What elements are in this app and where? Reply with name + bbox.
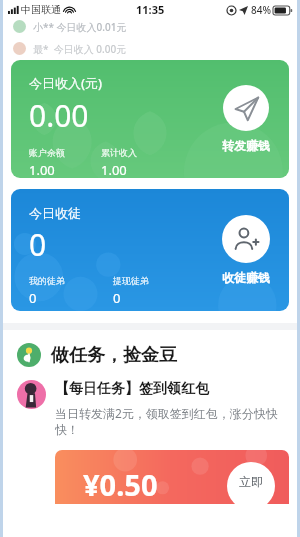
staticText: 立即 <box>239 474 263 489</box>
staticText: 账户余额 <box>29 147 65 158</box>
staticText: 做任务，捡金豆 <box>51 344 177 367</box>
button[interactable]: 【每日任务】签到领红包 <box>17 380 285 438</box>
staticText: 84% <box>251 3 271 17</box>
staticText: 中国联通 <box>21 3 61 16</box>
staticText: 0 <box>113 289 121 307</box>
staticText: 0.00 <box>29 95 89 136</box>
staticText: 当日转发满2元，领取签到红包，涨分快快快！ <box>55 405 285 438</box>
button[interactable]: 收徒赚钱 <box>222 215 270 285</box>
staticText: 我的徒弟 <box>29 275 65 286</box>
button[interactable]: 今日收入(元) <box>11 60 289 178</box>
staticText: 转发赚钱 <box>222 138 270 153</box>
button[interactable]: 转发赚钱 <box>222 85 270 153</box>
staticText: 提现徒弟 <box>113 275 149 286</box>
staticText: 最* 今日收入 0.00元 <box>33 42 127 56</box>
staticText: 0 <box>29 289 37 307</box>
staticText: 1.00 <box>101 161 127 178</box>
staticText: ¥0.50 <box>83 465 158 504</box>
staticText: 0 <box>29 224 47 265</box>
staticText: 小** 今日收入0.01元 <box>33 20 127 34</box>
staticText: 今日收入(元) <box>29 74 103 92</box>
staticText: 累计收入 <box>101 147 137 158</box>
button[interactable]: 今日收徒 <box>11 189 289 311</box>
staticText: 今日收徒 <box>29 205 81 221</box>
staticText: 【每日任务】签到领红包 <box>55 380 209 398</box>
button[interactable]: ¥0.50 <box>55 450 289 504</box>
staticText: 收徒赚钱 <box>222 270 270 285</box>
staticText: 1.00 <box>29 161 55 178</box>
staticText: 11:35 <box>136 2 165 17</box>
